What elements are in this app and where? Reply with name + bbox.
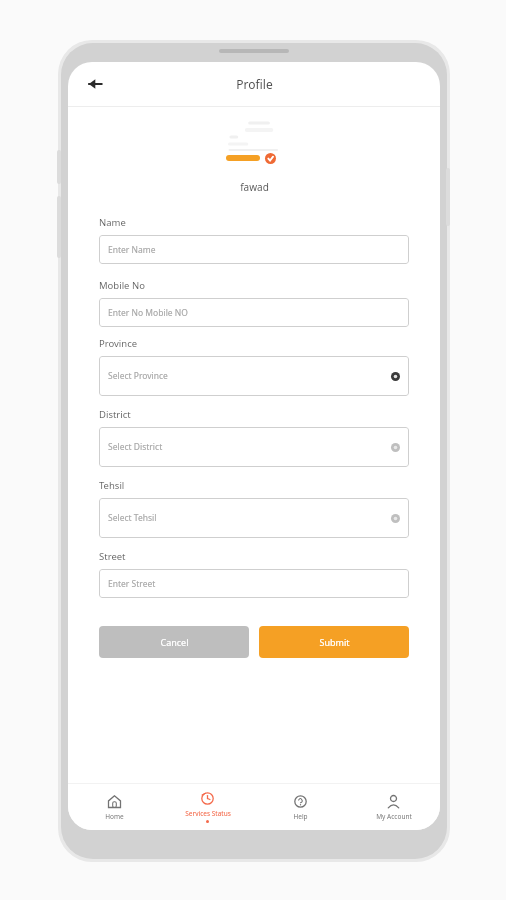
button[interactable]: Services Status	[161, 784, 254, 830]
staticText: Services Status	[185, 809, 231, 818]
staticText: Select Tehsil	[108, 512, 157, 524]
button[interactable]: Home	[68, 784, 161, 830]
button[interactable]: Enter No Mobile NO	[99, 298, 409, 327]
staticText: Submit	[319, 636, 350, 648]
staticText: Mobile No	[99, 279, 145, 292]
button[interactable]: Cancel	[99, 626, 249, 658]
staticText: Select District	[108, 441, 163, 453]
button[interactable]: Help	[254, 784, 347, 830]
button[interactable]: My Account	[347, 784, 440, 830]
staticText: Enter No Mobile NO	[108, 307, 188, 319]
staticText: Cancel	[160, 636, 189, 648]
button[interactable]: Profile photo	[218, 117, 290, 165]
staticText: Help	[293, 812, 308, 821]
button[interactable]: Select District	[99, 427, 409, 467]
staticText: Tehsil	[99, 479, 125, 492]
button[interactable]: Submit	[259, 626, 409, 658]
staticText: Profile	[236, 76, 273, 92]
button[interactable]: Select Province	[99, 356, 409, 396]
staticText: Enter Street	[108, 578, 156, 590]
button[interactable]: Back	[78, 67, 112, 101]
staticText: Province	[99, 337, 138, 350]
staticText: Street	[99, 550, 126, 563]
staticText: Name	[99, 216, 126, 229]
staticText: My Account	[376, 812, 412, 821]
staticText: Home	[105, 812, 124, 821]
button[interactable]: Select Tehsil	[99, 498, 409, 538]
button[interactable]: Enter Street	[99, 569, 409, 598]
button[interactable]: Enter Name	[99, 235, 409, 264]
staticText: Select Province	[108, 370, 168, 382]
staticText: District	[99, 408, 131, 421]
staticText: Enter Name	[108, 244, 156, 256]
staticText: fawad	[240, 180, 269, 194]
